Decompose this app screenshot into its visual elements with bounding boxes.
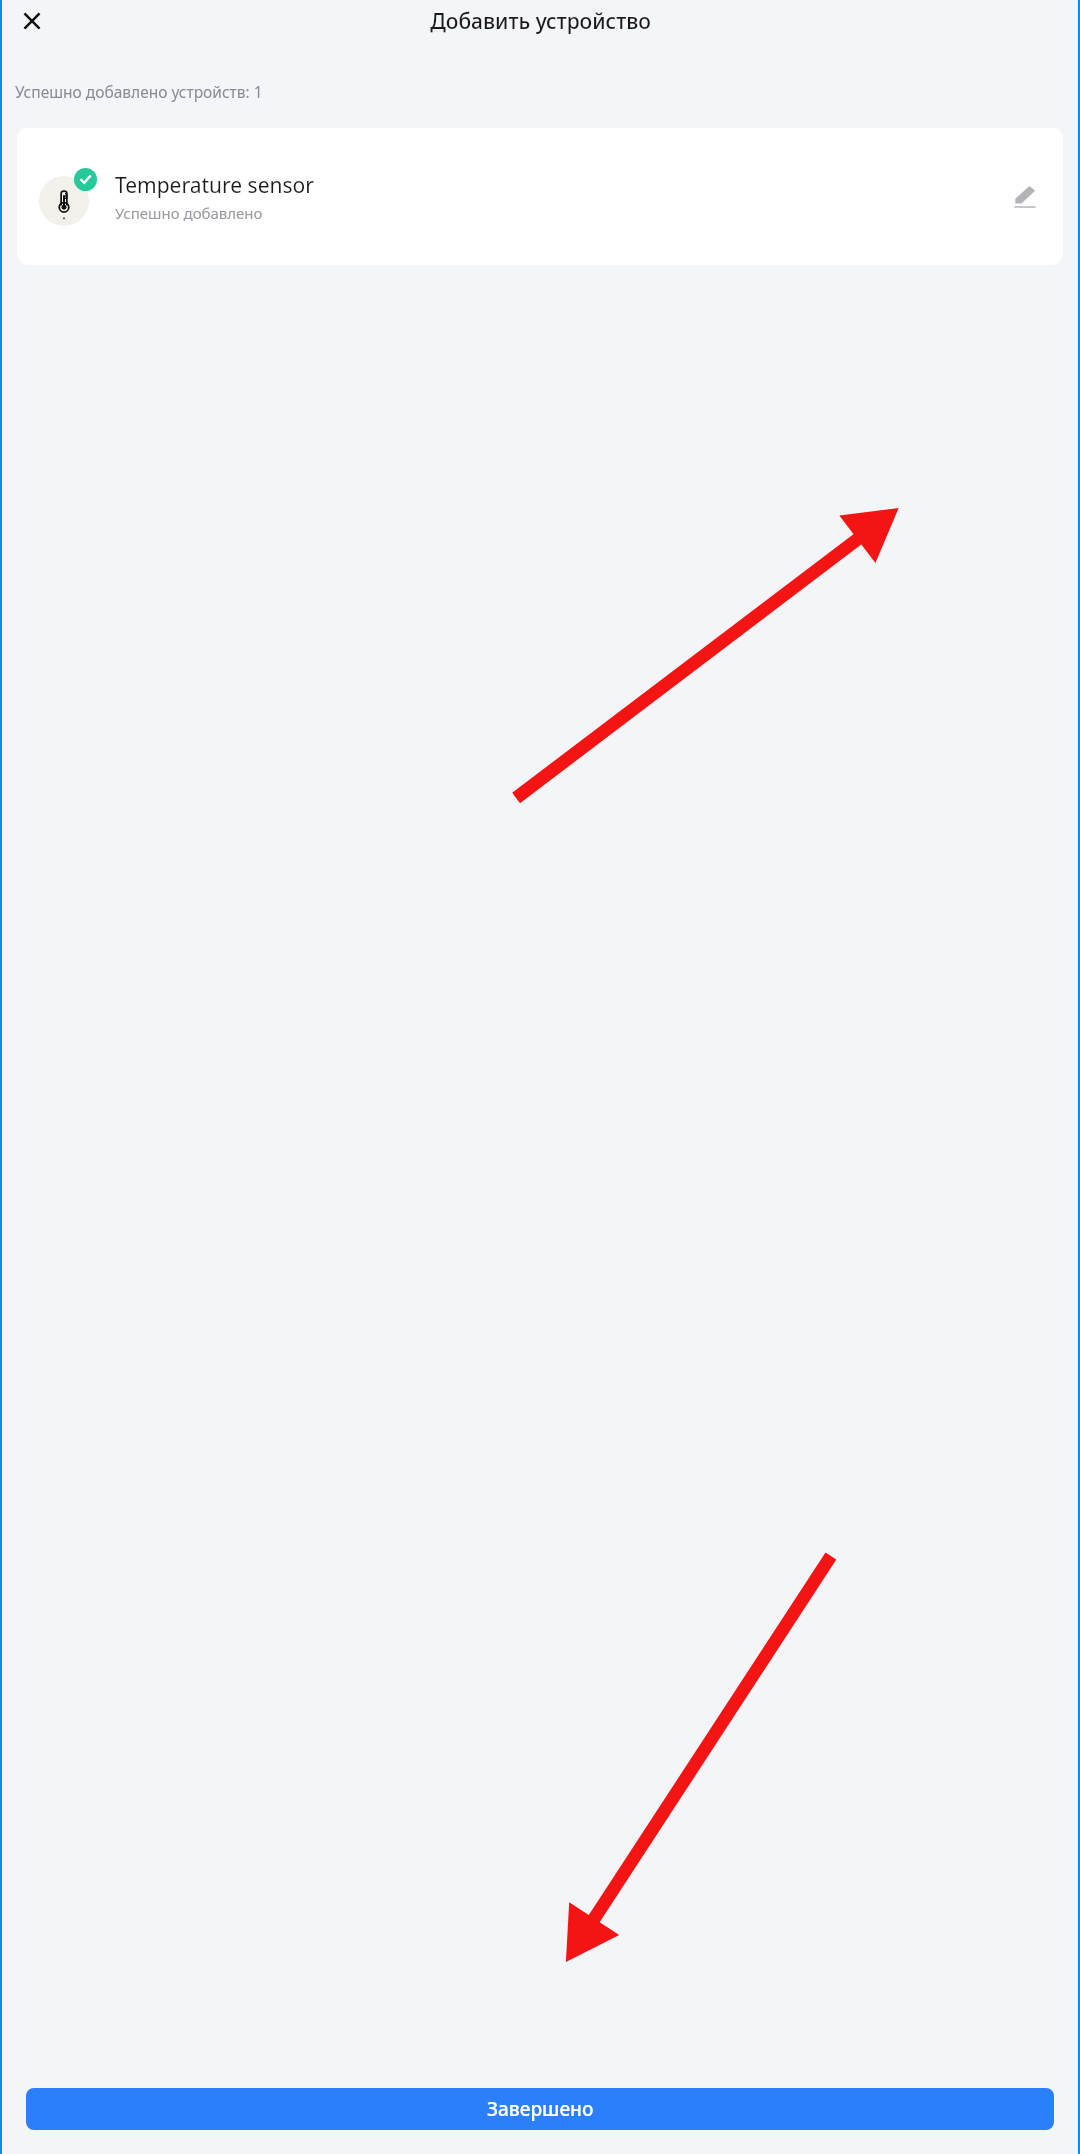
staticText: Завершено bbox=[487, 2096, 594, 2122]
button[interactable]: Close bbox=[12, 1, 52, 41]
staticText: Temperature sensor bbox=[115, 171, 314, 200]
button[interactable]: Temperature sensor bbox=[17, 128, 1063, 265]
staticText: Успешно добавлено bbox=[115, 203, 263, 223]
staticText: Добавить устройство bbox=[430, 7, 651, 36]
button[interactable]: Rename device bbox=[1005, 177, 1045, 217]
staticText: Успешно добавлено устройств: 1 bbox=[15, 81, 263, 102]
button[interactable]: Завершено bbox=[26, 2088, 1054, 2130]
